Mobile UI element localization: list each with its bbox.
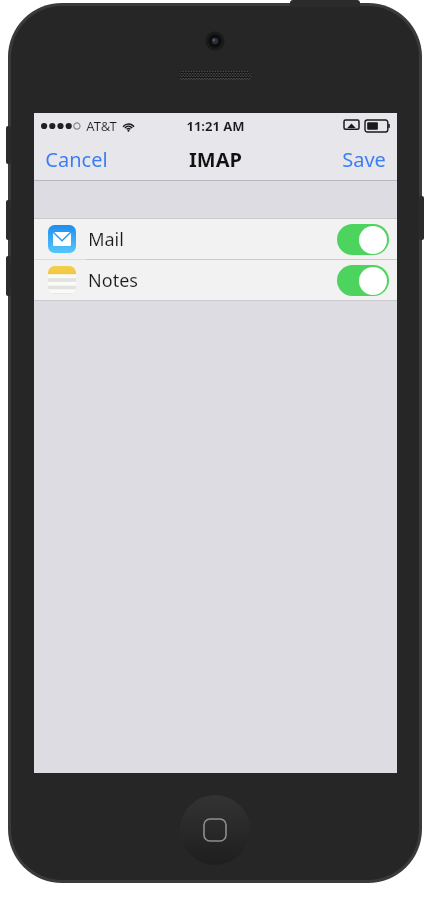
button[interactable]: Home [180, 795, 250, 865]
button[interactable]: Toggle on [337, 265, 389, 296]
staticText: 11:21 AM [186, 117, 245, 135]
staticText: Mail [88, 227, 124, 252]
other: Silent switch [6, 126, 11, 164]
button[interactable]: Cancel [34, 140, 119, 179]
staticText: Save [342, 146, 386, 173]
staticText: AT&T [86, 117, 117, 135]
staticText: Cancel [45, 146, 108, 173]
button[interactable]: Save [331, 140, 397, 179]
other: Volume down [6, 256, 11, 296]
button[interactable]: Notes [34, 260, 397, 300]
other: Volume up [6, 200, 11, 240]
staticText: IMAP [189, 146, 242, 173]
staticText: Notes [88, 268, 138, 293]
other: Power [290, 0, 360, 7]
button[interactable]: Toggle on [337, 224, 389, 255]
button[interactable]: Mail [34, 219, 397, 259]
